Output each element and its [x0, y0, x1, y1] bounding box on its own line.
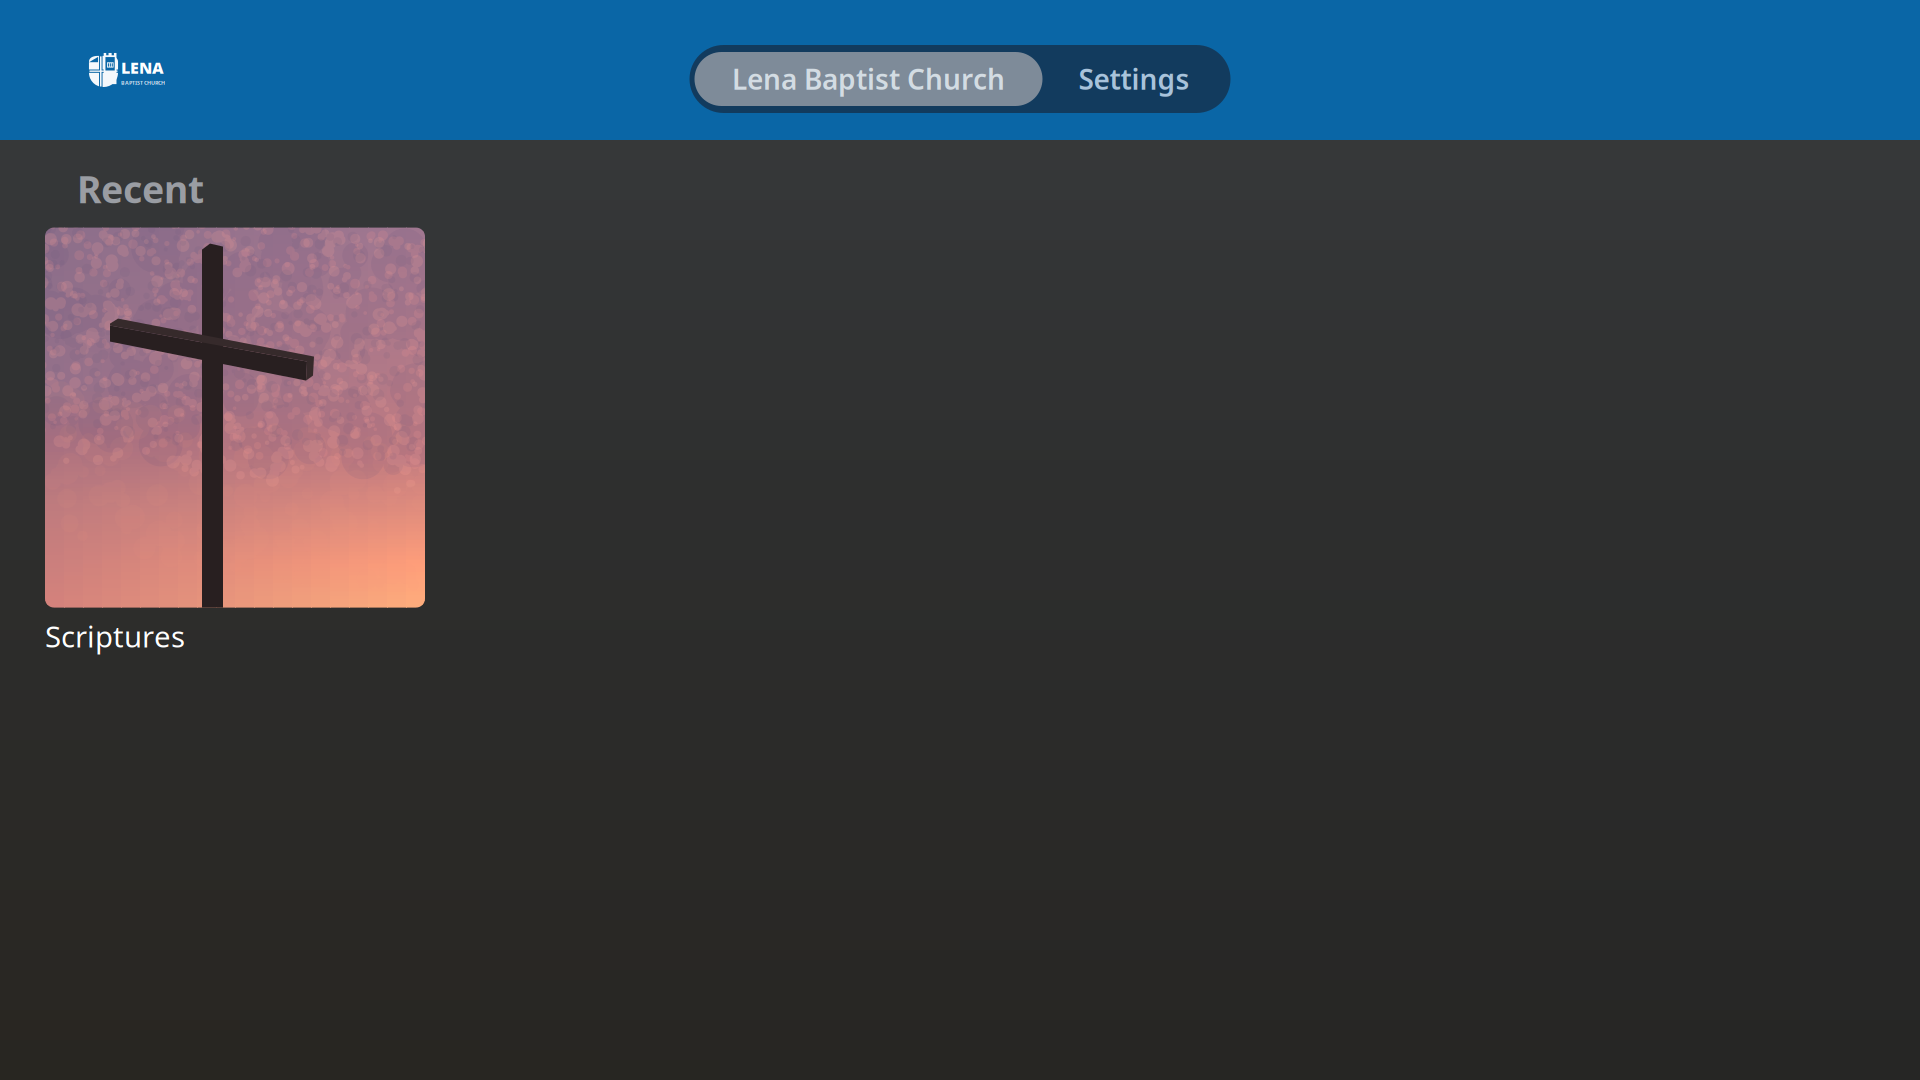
staticText: Recent: [77, 164, 204, 214]
staticText: Lena Baptist Church: [732, 60, 1005, 98]
button[interactable]: Lena Baptist Church: [694, 52, 1042, 106]
staticText: Scriptures: [45, 617, 185, 656]
staticText: BAPTIST CHURCH: [121, 79, 165, 86]
button[interactable]: Scriptures: [45, 214, 425, 656]
staticText: LENA: [121, 57, 164, 78]
button[interactable]: Lena Baptist Church: [0, 52, 185, 88]
staticText: Settings: [1078, 60, 1189, 98]
button[interactable]: Settings: [1042, 52, 1225, 106]
